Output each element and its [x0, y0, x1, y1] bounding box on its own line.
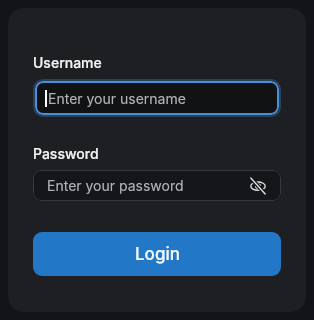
button[interactable]: Enter your password — [33, 170, 281, 201]
staticText: Login — [135, 244, 180, 265]
staticText: Username — [33, 54, 102, 71]
staticText: Password — [33, 145, 99, 162]
staticText: Enter your password — [47, 177, 184, 194]
staticText: Enter your username — [48, 90, 186, 107]
button[interactable]: Enter your username — [35, 81, 279, 115]
button[interactable] — [249, 177, 267, 195]
button[interactable]: Login — [33, 232, 281, 276]
